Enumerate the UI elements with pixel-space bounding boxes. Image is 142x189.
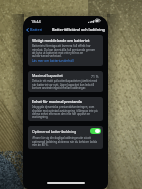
button[interactable]: Optimerad batteriladdning (28, 126, 103, 136)
staticText: Batteriets förmåga att leverera full eff… (32, 44, 99, 57)
staticText: 71 % (91, 74, 99, 78)
staticText: Maximal kapacitet (32, 73, 63, 78)
button[interactable]: Optimerad batteriladdning på (90, 128, 101, 134)
staticText: Detta är ett mått på batterikapaciteten … (32, 79, 99, 89)
staticText: iPhone lär sig din dagliga laddningsruti… (32, 136, 99, 146)
staticText: Batteri (30, 27, 43, 32)
staticText: Viktigt meddelande om batteriet (32, 38, 90, 43)
staticText: Inbyggda dynamiska prestandahanteringen,… (32, 105, 99, 118)
staticText: Optimerad batteriladdning (32, 129, 77, 134)
button[interactable]: Läs mer om batteriunderhåll (32, 59, 74, 63)
staticText: 18:44 (31, 19, 41, 24)
staticText: Batteritillstånd och laddning (52, 27, 105, 32)
staticText: Enhet för maximal prestanda (32, 99, 82, 104)
button[interactable]: Batteri (24, 27, 45, 32)
